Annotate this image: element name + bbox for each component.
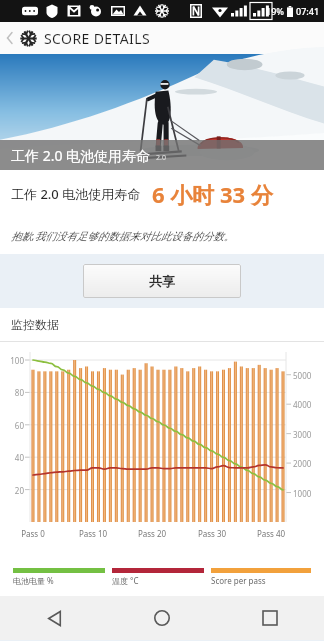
staticText: Score per pass (211, 575, 266, 586)
button[interactable]: Recent apps (216, 596, 324, 640)
staticText: Pass 10 (76, 528, 110, 539)
staticText: 19% (266, 5, 284, 17)
staticText: 100 (0, 355, 24, 366)
staticText: 电池电量 % (13, 575, 54, 586)
staticText: 5000 (293, 370, 312, 381)
button[interactable]: Back (0, 22, 20, 54)
button[interactable]: Back (0, 596, 108, 640)
staticText: 6 小时 33 分 (152, 179, 273, 209)
button[interactable]: Home (108, 596, 216, 640)
staticText: SCORE DETAILS (44, 29, 151, 48)
staticText: 温度 °C (112, 575, 139, 586)
staticText: 3000 (293, 429, 312, 440)
staticText: 共享 (149, 273, 175, 289)
staticText: 监控数据 (11, 317, 59, 332)
staticText: 20 (0, 485, 24, 496)
staticText: Pass 20 (135, 528, 169, 539)
staticText: 2.0 (156, 153, 166, 163)
staticText: Pass 30 (195, 528, 229, 539)
staticText: 抱歉,我们没有足够的数据来对比此设备的分数。 (11, 229, 235, 243)
staticText: 07:41 (296, 5, 320, 17)
staticText: 2000 (293, 458, 312, 469)
button[interactable]: 共享 (83, 264, 241, 298)
staticText: 工作 2.0 电池使用寿命 (11, 146, 151, 165)
staticText: 40 (0, 452, 24, 463)
staticText: Pass 40 (254, 528, 288, 539)
staticText: 60 (0, 420, 24, 431)
staticText: 工作 2.0 电池使用寿命 (11, 185, 141, 203)
staticText: 4000 (293, 399, 312, 410)
staticText: 80 (0, 387, 24, 398)
staticText: Pass 0 (16, 528, 50, 539)
staticText: 1000 (293, 488, 312, 499)
